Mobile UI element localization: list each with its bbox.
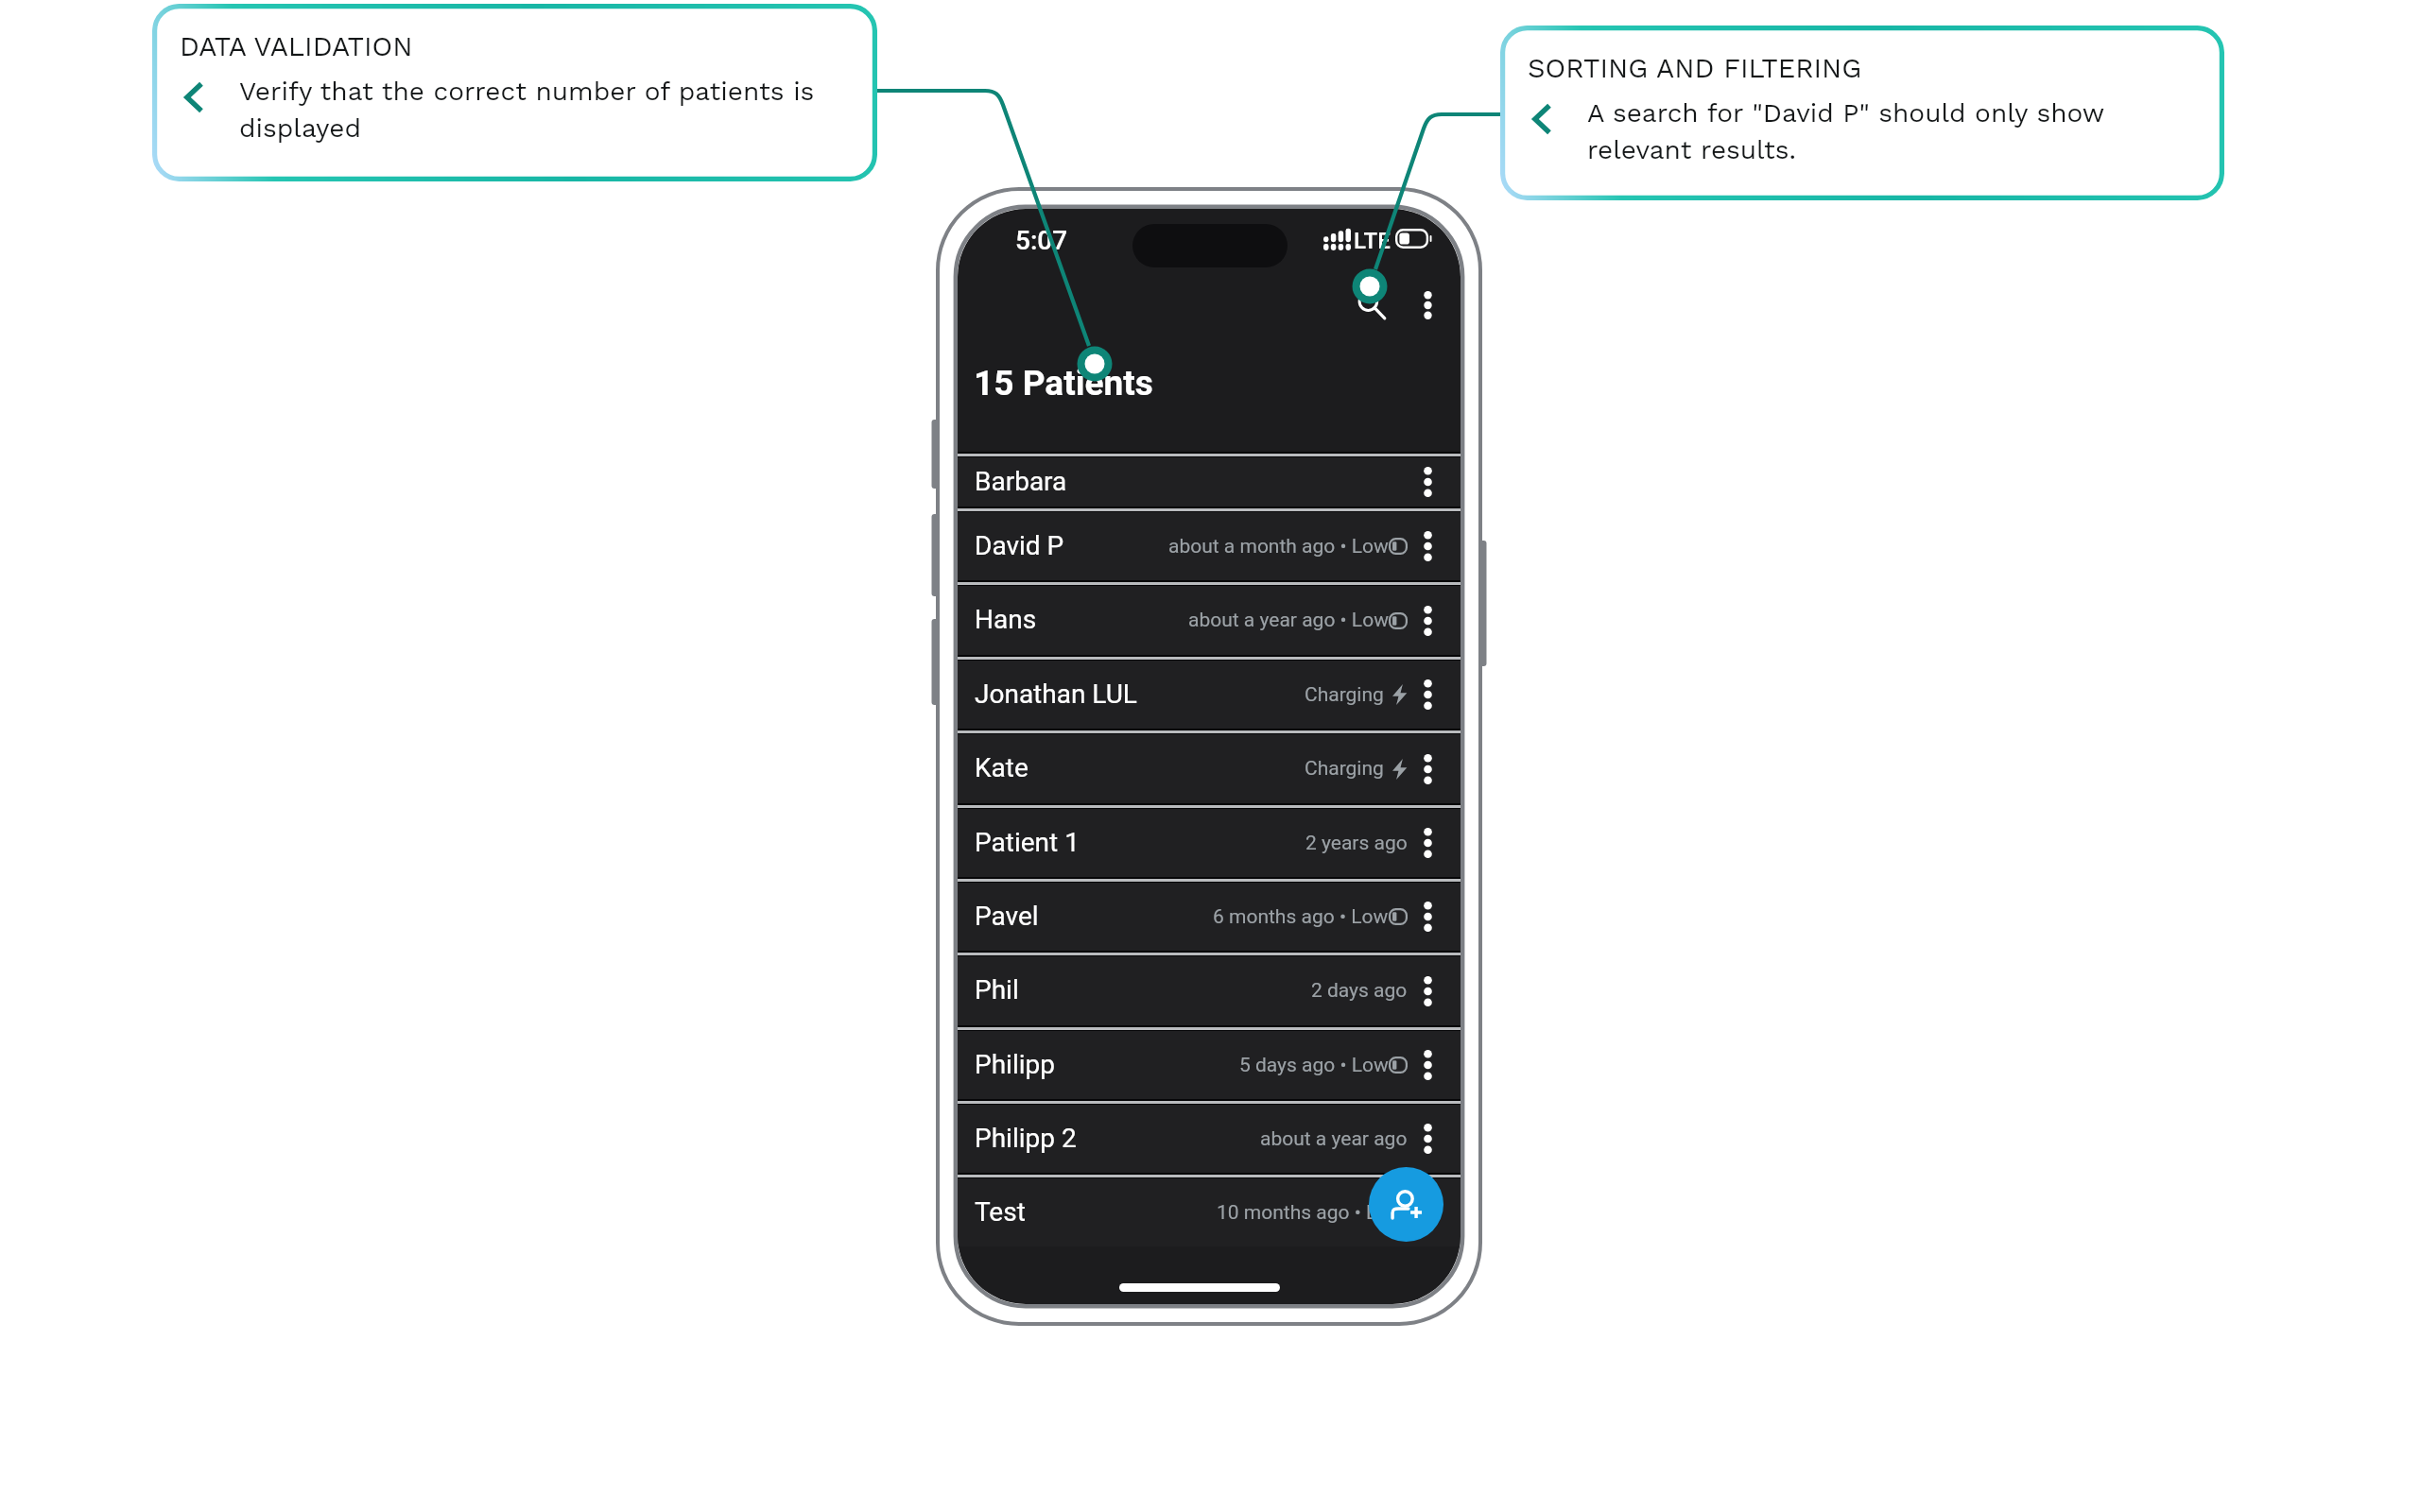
button[interactable]: Row options	[1408, 823, 1447, 863]
button[interactable]: Row options	[1408, 526, 1447, 566]
staticText: SORTING AND FILTERING	[1528, 52, 1862, 84]
staticText: Barbara	[975, 466, 1067, 497]
button[interactable]: Barbara	[958, 457, 1461, 507]
staticText: about a year ago	[1260, 1127, 1408, 1151]
button[interactable]: Add patient	[1369, 1167, 1443, 1242]
staticText: Charging	[1305, 683, 1384, 707]
button[interactable]: DATA VALIDATION	[152, 4, 877, 181]
button[interactable]: Jonathan LUL	[958, 661, 1461, 729]
button[interactable]: Phil	[958, 956, 1461, 1025]
staticText: 10 months ago • Lo	[1217, 1201, 1389, 1225]
button[interactable]: Row options	[1408, 675, 1447, 714]
staticText: Hans	[975, 604, 1037, 635]
staticText: 5:07	[1015, 225, 1068, 256]
staticText: about a year ago • Low	[1188, 609, 1389, 632]
staticText: DATA VALIDATION	[180, 30, 413, 62]
button[interactable]: More options	[1408, 285, 1447, 325]
button[interactable]: SORTING AND FILTERING	[1500, 26, 2224, 200]
staticText: 2 days ago	[1311, 979, 1408, 1003]
button[interactable]: Row options	[1408, 1193, 1447, 1232]
staticText: 5 days ago • Low	[1239, 1054, 1389, 1077]
staticText: A search for "David P" should only show …	[1587, 97, 2182, 165]
button[interactable]: Row options	[1408, 897, 1447, 936]
button[interactable]: Hans	[958, 586, 1461, 655]
button[interactable]: Row options	[1408, 601, 1447, 641]
button[interactable]: Pavel	[958, 883, 1461, 951]
staticText: 15 Patients	[974, 363, 1153, 404]
staticText: 2 years ago	[1305, 832, 1408, 855]
staticText: David P	[975, 530, 1064, 561]
button[interactable]: Patient 1	[958, 809, 1461, 877]
button[interactable]: David P	[958, 512, 1461, 580]
staticText: Charging	[1305, 757, 1384, 781]
button[interactable]: Row options	[1408, 749, 1447, 789]
staticText: 6 months ago • Low	[1213, 905, 1389, 929]
button[interactable]: Search	[1347, 281, 1396, 330]
button[interactable]: Philipp	[958, 1031, 1461, 1099]
staticText: Philipp 2	[975, 1123, 1077, 1154]
staticText: Kate	[975, 752, 1028, 783]
staticText: Philipp	[975, 1049, 1055, 1080]
staticText: Phil	[975, 974, 1019, 1005]
button[interactable]: Row options	[1408, 971, 1447, 1011]
button[interactable]: Kate	[958, 734, 1461, 803]
button[interactable]: Test	[958, 1178, 1461, 1246]
staticText: Verify that the correct number of patien…	[239, 76, 835, 144]
button[interactable]: Philipp 2	[958, 1105, 1461, 1173]
button[interactable]: Row options	[1408, 462, 1447, 502]
button[interactable]: Row options	[1408, 1119, 1447, 1159]
staticText: about a month ago • Low	[1168, 535, 1389, 558]
staticText: Pavel	[975, 901, 1039, 932]
staticText: Patient 1	[975, 827, 1080, 858]
staticText: LTE	[1354, 228, 1391, 254]
staticText: Test	[975, 1196, 1026, 1228]
staticText: Jonathan LUL	[975, 679, 1137, 710]
button[interactable]: Row options	[1408, 1045, 1447, 1085]
